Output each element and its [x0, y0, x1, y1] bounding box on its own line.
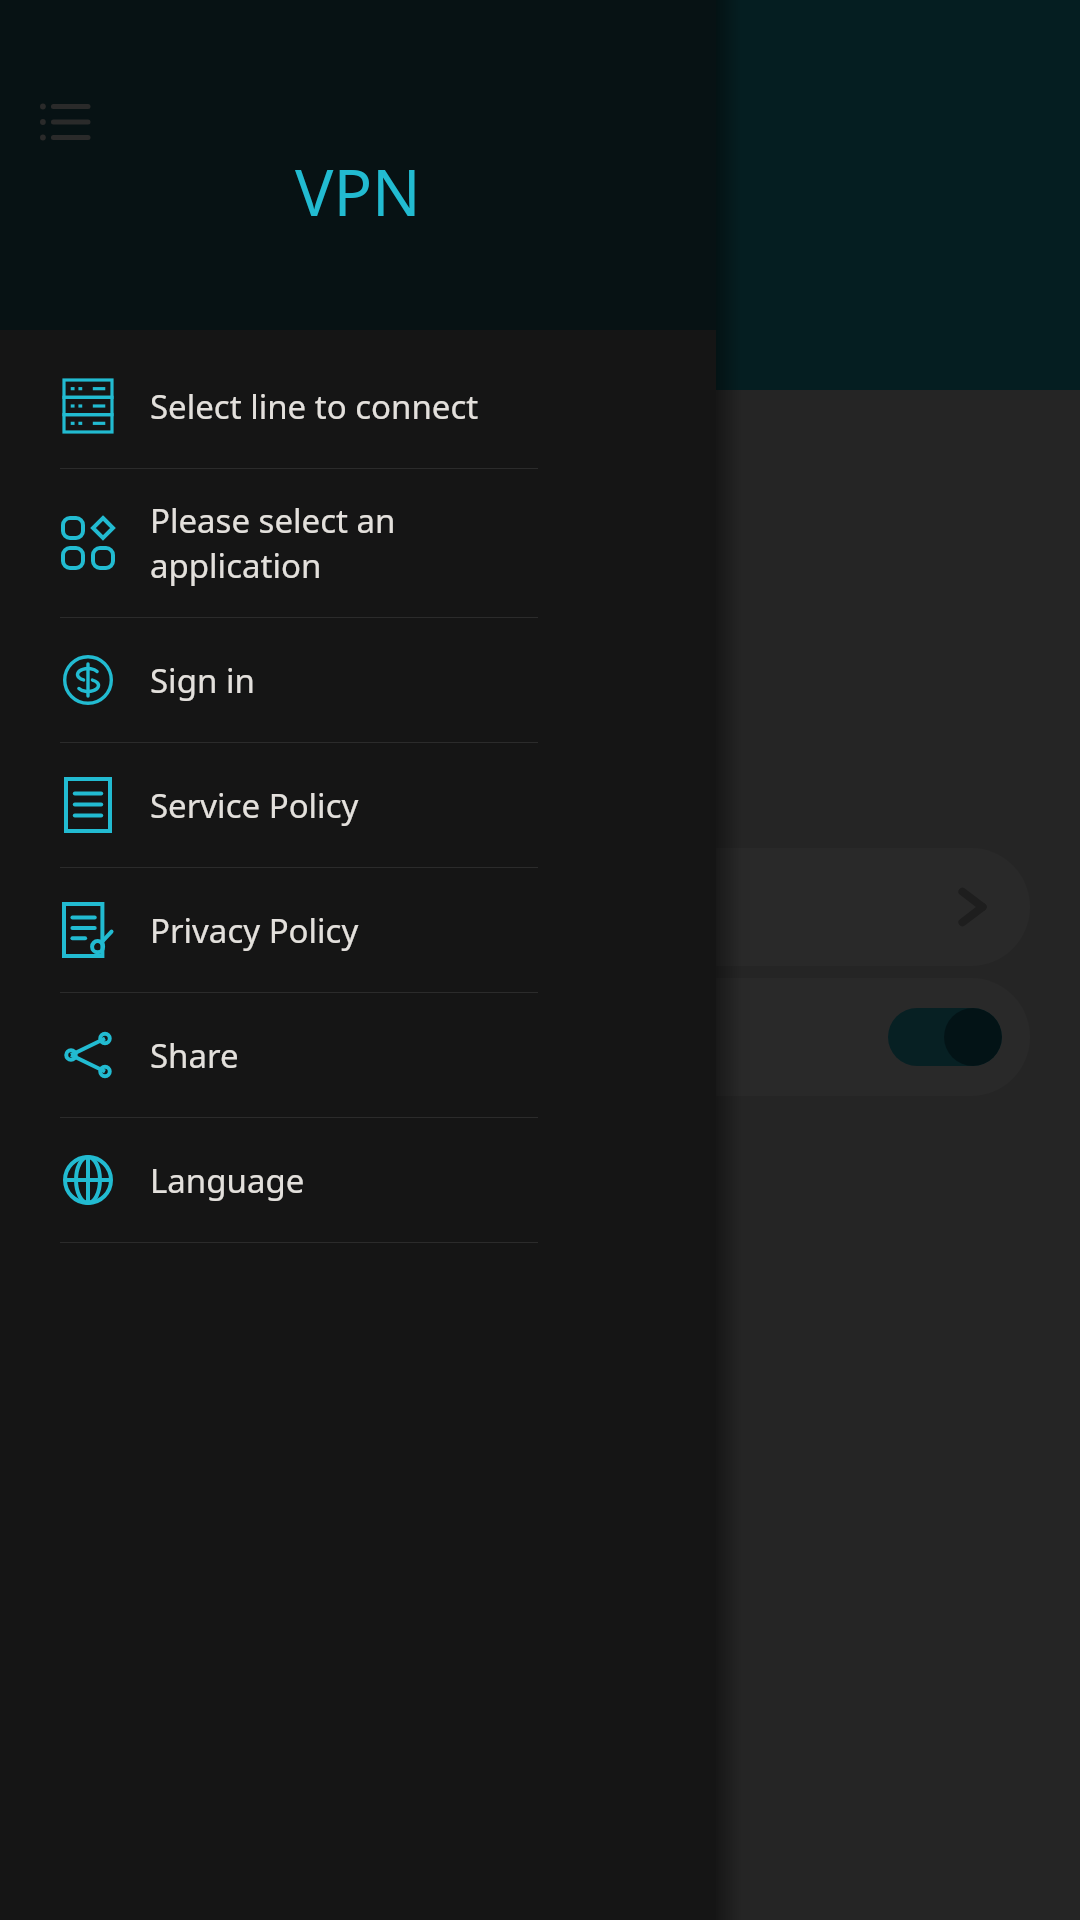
button[interactable]: Language [0, 1118, 716, 1242]
button[interactable]: Privacy Policy [0, 868, 716, 992]
staticText: Language [150, 1158, 305, 1203]
staticText: America1 [184, 887, 317, 928]
staticText: Privacy Policy [150, 908, 359, 953]
button[interactable]: Whether to switch to smart mode [50, 978, 1030, 1096]
button[interactable]: Share [0, 993, 716, 1117]
staticText: Sign in [150, 658, 255, 703]
button[interactable]: Smart mode toggle [888, 1008, 1002, 1066]
button[interactable]: America1 [50, 848, 1030, 966]
button[interactable]: Select line to connect [0, 344, 716, 468]
staticText: Service Policy [150, 783, 359, 828]
staticText: Whether to switch to smart mode [162, 1019, 588, 1056]
staticText: Select line to connect [150, 384, 479, 429]
staticText: Please select an application [150, 498, 396, 588]
staticText: Share [150, 1033, 239, 1078]
button[interactable]: Service Policy [0, 743, 716, 867]
staticText: VPN [295, 148, 421, 235]
button[interactable]: Sign in [0, 618, 716, 742]
button[interactable]: Please select an application [0, 469, 716, 617]
button[interactable]: Open navigation menu [28, 82, 100, 154]
